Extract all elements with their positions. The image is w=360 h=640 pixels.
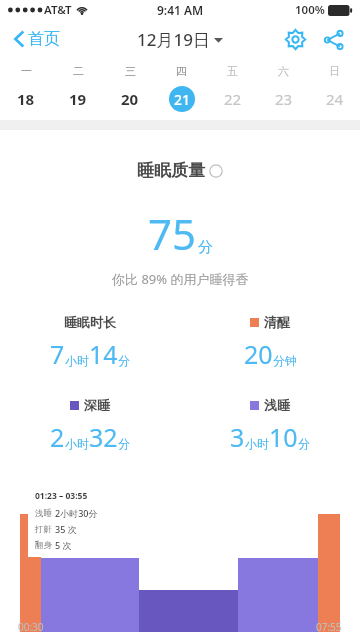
button[interactable]: 21 <box>156 85 207 113</box>
staticText: 10 <box>269 420 298 454</box>
staticText: 14 <box>89 337 118 371</box>
button[interactable]: 首页 <box>10 25 64 53</box>
staticText: 01:23 – 03:55 <box>35 490 88 502</box>
staticText: 35 次 <box>55 523 77 535</box>
staticText: 18 <box>17 89 35 109</box>
staticText: 20 <box>121 89 139 109</box>
staticText: 00:30 <box>18 620 44 634</box>
button[interactable]: 22 <box>207 85 258 113</box>
staticText: 22 <box>224 89 242 109</box>
staticText: 分 <box>298 436 310 451</box>
staticText: 翻身 <box>35 540 52 551</box>
button[interactable]: 24 <box>309 85 360 113</box>
staticText: 9:41 AM <box>157 2 204 18</box>
staticText: 浅睡 <box>264 397 290 413</box>
button[interactable]: 23 <box>258 85 309 113</box>
staticText: 清醒 <box>264 314 290 330</box>
staticText: 75 <box>148 205 197 262</box>
button[interactable]: Share <box>320 26 348 54</box>
staticText: 三 <box>125 64 136 78</box>
staticText: 19 <box>69 89 87 109</box>
staticText: 小时 <box>245 436 269 451</box>
staticText: 100% <box>295 2 325 18</box>
staticText: 12月19日 <box>137 28 210 51</box>
staticText: 一 <box>21 64 32 78</box>
button[interactable]: Settings <box>281 25 310 54</box>
staticText: 2 <box>50 420 65 454</box>
staticText: 21 <box>174 90 191 109</box>
staticText: 深睡 <box>84 397 110 413</box>
button[interactable]: 12月19日 <box>133 24 227 55</box>
staticText: 日 <box>329 64 340 78</box>
staticText: 3 <box>230 420 245 454</box>
staticText: 24 <box>326 89 344 109</box>
button[interactable]: 20 <box>104 85 156 113</box>
staticText: 小时 <box>65 353 89 368</box>
staticText: 睡眠时长 <box>64 314 116 330</box>
staticText: 分 <box>118 436 130 451</box>
staticText: 23 <box>275 89 293 109</box>
staticText: 7 <box>50 337 65 371</box>
button[interactable]: 18 <box>0 85 52 113</box>
staticText: 小时 <box>65 436 89 451</box>
staticText: 分钟 <box>273 353 297 368</box>
staticText: 分 <box>198 238 213 257</box>
button[interactable]: 浅睡 <box>180 397 360 454</box>
staticText: 07:55 <box>316 620 342 634</box>
staticText: 睡眠质量 <box>137 160 205 181</box>
button[interactable]: 深睡 <box>0 397 180 454</box>
staticText: 首页 <box>28 29 60 49</box>
staticText: 六 <box>278 64 289 78</box>
button[interactable]: 清醒 <box>180 314 360 371</box>
button[interactable]: 睡眠时长 <box>0 314 180 371</box>
staticText: 分 <box>118 353 130 368</box>
staticText: 打鼾 <box>35 524 52 535</box>
staticText: 5 次 <box>55 539 72 551</box>
staticText: 你比 89% 的用户睡得香 <box>112 270 249 288</box>
staticText: 32 <box>89 420 118 454</box>
staticText: 二 <box>73 64 84 78</box>
button[interactable]: 19 <box>52 85 104 113</box>
staticText: 四 <box>176 64 187 78</box>
staticText: 2小时30分 <box>55 507 98 519</box>
staticText: 五 <box>227 64 238 78</box>
button[interactable]: Help <box>209 164 223 178</box>
staticText: 20 <box>244 337 273 371</box>
staticText: AT&T <box>44 2 72 18</box>
staticText: 浅睡 <box>35 508 52 519</box>
